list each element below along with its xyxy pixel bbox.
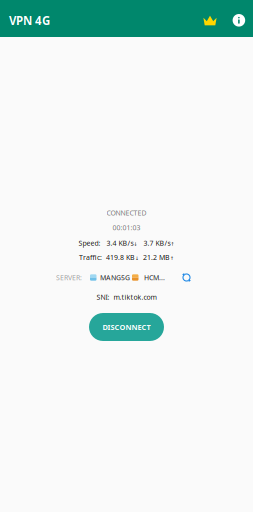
button[interactable]: DISCONNECT: [89, 313, 164, 341]
staticText: VPN 4G: [9, 13, 50, 28]
staticText: CONNECTED: [106, 208, 146, 218]
button[interactable]: Premium: [200, 10, 220, 26]
staticText: 00:01:03: [112, 223, 140, 232]
staticText: SERVER:: [56, 273, 82, 282]
staticText: DISCONNECT: [102, 322, 150, 332]
staticText: Traffic: 419.8 KB↓ 21.2 MB↑: [79, 253, 174, 262]
staticText: HCM...: [144, 273, 165, 282]
staticText: SNI: m.tiktok.com: [96, 292, 156, 302]
button[interactable]: Change server: [181, 272, 192, 283]
button[interactable]: Information: [230, 9, 248, 28]
staticText: Speed: 3.4 KB/s↓ 3.7 KB/s↑: [78, 238, 174, 248]
staticText: MANG5G: [100, 273, 130, 282]
